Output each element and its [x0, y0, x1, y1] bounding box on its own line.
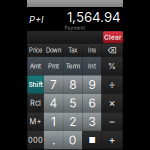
button[interactable]: Price — [27, 44, 44, 57]
staticText: 000 — [28, 136, 43, 145]
button[interactable]: Term — [63, 57, 82, 75]
button[interactable]: Pmt — [44, 57, 63, 75]
button[interactable]: . — [44, 131, 63, 149]
button[interactable]: 4 — [44, 94, 63, 112]
button[interactable]: 7 — [44, 75, 63, 94]
button[interactable]: Clear — [103, 31, 123, 43]
staticText: 7 — [50, 77, 57, 92]
button[interactable]: + — [101, 131, 123, 149]
button[interactable]: 6 — [82, 94, 101, 112]
staticText: 1 — [51, 114, 56, 129]
button[interactable]: 000 — [27, 131, 44, 149]
button[interactable]: Amt — [27, 57, 44, 75]
staticText: Amt — [30, 62, 41, 70]
button[interactable]: Shift — [27, 75, 44, 94]
button[interactable]: 0 — [63, 131, 82, 149]
button[interactable]: 3 — [82, 112, 101, 131]
staticText: Price — [29, 47, 42, 54]
button[interactable]: Tax — [63, 44, 82, 57]
staticText: × — [109, 97, 116, 110]
staticText: M+ — [30, 117, 42, 126]
staticText: − — [109, 115, 116, 128]
button[interactable]: M+ — [27, 112, 44, 131]
staticText: + — [109, 134, 116, 147]
staticText: 2 — [69, 114, 76, 129]
button[interactable]: ⌫ — [101, 44, 123, 57]
button[interactable]: 1 — [44, 112, 63, 131]
staticText: Int — [88, 62, 96, 70]
staticText: Rcl — [30, 99, 41, 108]
button[interactable]: 2 — [63, 112, 82, 131]
staticText: . — [52, 133, 55, 147]
staticText: 6 — [88, 96, 95, 110]
staticText: 5 — [69, 96, 76, 110]
staticText: 1,564.94 — [67, 9, 121, 25]
staticText: Term — [66, 62, 80, 70]
staticText: Payment — [64, 25, 85, 31]
button[interactable]: Int — [82, 57, 101, 75]
staticText: Shift — [29, 81, 43, 89]
staticText: ⌫ — [107, 45, 117, 55]
staticText: 4 — [49, 96, 57, 110]
staticText: Ins — [88, 47, 96, 54]
button[interactable]: Rcl — [27, 94, 44, 112]
button[interactable]: 8 — [63, 75, 82, 94]
button[interactable]: ■ — [82, 131, 101, 149]
staticText: % — [108, 61, 116, 71]
staticText: 9 — [88, 77, 95, 92]
staticText: 0 — [69, 133, 77, 147]
button[interactable]: % — [101, 57, 123, 75]
staticText: Tax — [68, 47, 77, 54]
button[interactable]: 9 — [82, 75, 101, 94]
button[interactable]: Down — [44, 44, 63, 57]
staticText: Down — [46, 47, 61, 54]
staticText: P+I — [29, 14, 44, 25]
staticText: 8 — [69, 77, 76, 92]
staticText: ■ — [88, 135, 95, 145]
button[interactable]: 5 — [63, 94, 82, 112]
button[interactable]: − — [101, 112, 123, 131]
button[interactable]: ÷ — [101, 75, 123, 94]
button[interactable]: × — [101, 94, 123, 112]
staticText: Pmt — [48, 62, 59, 70]
button[interactable]: Ins — [82, 44, 101, 57]
staticText: ÷ — [109, 78, 116, 91]
staticText: 3 — [88, 114, 95, 129]
staticText: Clear — [104, 33, 122, 41]
